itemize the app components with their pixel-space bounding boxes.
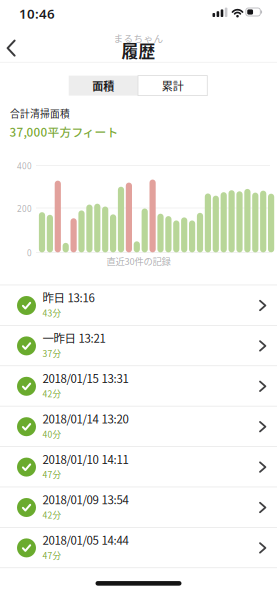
button[interactable]: Back [0, 31, 31, 66]
button[interactable]: 2018/01/05 14:44 [0, 528, 277, 568]
staticText: 37,000平方フィート [9, 123, 118, 140]
staticText: 履歴 [121, 38, 155, 62]
staticText: 42分 [42, 387, 61, 400]
staticText: 200 [17, 203, 32, 214]
staticText: 2018/01/15 13:31 [42, 370, 128, 386]
button[interactable]: 累計 [138, 76, 207, 96]
staticText: 2018/01/05 14:44 [42, 531, 128, 548]
staticText: 10:46 [19, 5, 55, 22]
button[interactable]: 2018/01/15 13:31 [0, 366, 277, 406]
staticText: 400 [17, 161, 32, 171]
staticText: 2018/01/14 13:20 [42, 410, 128, 427]
staticText: 一昨日 13:21 [42, 329, 105, 346]
staticText: 面積 [92, 78, 114, 94]
staticText: 47分 [42, 468, 61, 481]
staticText: 昨日 13:16 [42, 289, 94, 306]
staticText: 40分 [42, 428, 61, 440]
staticText: 合計清掃面積 [10, 106, 70, 120]
button[interactable]: 昨日 13:16 [0, 285, 277, 326]
button[interactable]: 2018/01/14 13:20 [0, 406, 277, 447]
staticText: まるちゃん [113, 31, 163, 45]
button[interactable]: 面積 [69, 76, 138, 96]
staticText: 37分 [42, 347, 61, 359]
button[interactable]: 2018/01/09 13:54 [0, 487, 277, 528]
button[interactable]: 一昨日 13:21 [0, 326, 277, 366]
staticText: 42分 [42, 509, 61, 521]
staticText: 47分 [42, 549, 61, 561]
staticText: 0 [27, 248, 32, 258]
staticText: 2018/01/09 13:54 [42, 491, 128, 508]
button[interactable]: 2018/01/10 14:11 [0, 447, 277, 487]
staticText: 43分 [42, 307, 61, 319]
staticText: 直近30件の記録 [106, 254, 170, 268]
staticText: 累計 [162, 78, 184, 94]
staticText: 2018/01/10 14:11 [42, 451, 128, 467]
